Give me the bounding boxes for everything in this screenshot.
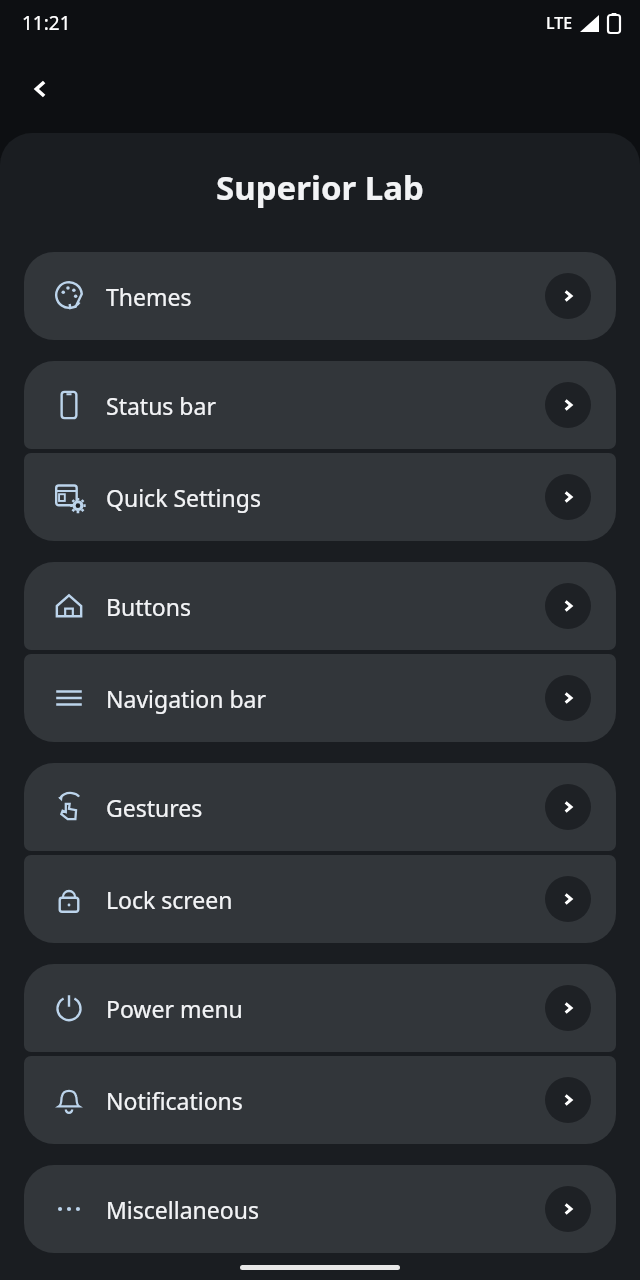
button[interactable]: Open Miscellaneous <box>545 1186 591 1232</box>
button[interactable]: Status bar <box>24 361 616 449</box>
button[interactable]: Back <box>14 63 66 115</box>
button[interactable]: Power menu <box>24 964 616 1052</box>
staticText: Superior Lab <box>0 165 640 210</box>
button[interactable]: Gestures <box>24 763 616 851</box>
button[interactable]: Open Buttons <box>545 583 591 629</box>
button[interactable]: Open Lock screen <box>545 876 591 922</box>
button[interactable]: Open Navigation bar <box>545 675 591 721</box>
button[interactable]: Themes <box>24 252 616 340</box>
button[interactable]: Quick Settings <box>24 453 616 541</box>
staticText: Status bar <box>106 390 545 421</box>
button[interactable]: Open Status bar <box>545 382 591 428</box>
button[interactable]: Buttons <box>24 562 616 650</box>
staticText: Quick Settings <box>106 482 545 513</box>
staticText: Themes <box>106 281 545 312</box>
button[interactable]: Miscellaneous <box>24 1165 616 1253</box>
button[interactable]: Open Notifications <box>545 1077 591 1123</box>
staticText: Lock screen <box>106 884 545 915</box>
button[interactable]: Notifications <box>24 1056 616 1144</box>
button[interactable]: Open Themes <box>545 273 591 319</box>
staticText: Buttons <box>106 591 545 622</box>
staticText: Miscellaneous <box>106 1194 545 1225</box>
staticText: Power menu <box>106 993 545 1024</box>
staticText: 11:21 <box>22 10 71 36</box>
button[interactable]: Navigation bar <box>24 654 616 742</box>
button[interactable]: Open Power menu <box>545 985 591 1031</box>
staticText: Notifications <box>106 1085 545 1116</box>
staticText: Gestures <box>106 792 545 823</box>
staticText: LTE <box>546 12 573 34</box>
button[interactable]: Open Gestures <box>545 784 591 830</box>
staticText: Navigation bar <box>106 683 545 714</box>
button[interactable]: Open Quick Settings <box>545 474 591 520</box>
button[interactable]: Lock screen <box>24 855 616 943</box>
